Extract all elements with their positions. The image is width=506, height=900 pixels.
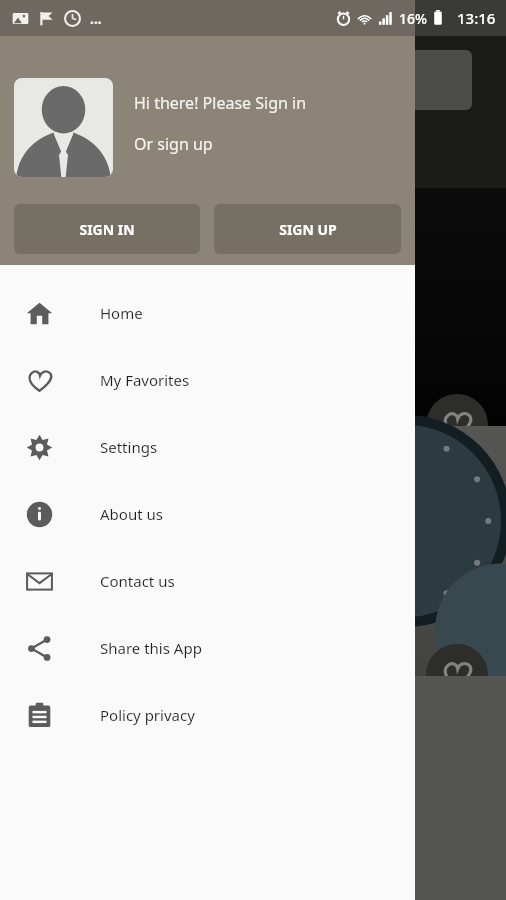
button[interactable]: Share this App: [0, 614, 415, 681]
button[interactable]: Home: [0, 279, 415, 346]
button[interactable]: SIGN UP: [214, 204, 401, 254]
staticText: Contact us: [100, 571, 175, 591]
button[interactable]: Profile picture: [14, 78, 113, 177]
button[interactable]: Favorite: [426, 394, 488, 456]
staticText: About us: [100, 504, 163, 524]
staticText: 13:16: [457, 8, 496, 28]
button[interactable]: Settings: [0, 413, 415, 480]
button[interactable]: SIGN IN: [14, 204, 200, 254]
staticText: ...: [90, 9, 102, 28]
button[interactable]: Contact us: [0, 547, 415, 614]
staticText: Share this App: [100, 638, 202, 658]
staticText: My Favorites: [100, 370, 190, 390]
staticText: Settings: [100, 437, 158, 457]
button[interactable]: Favorite: [426, 644, 488, 706]
staticText: SIGN IN: [79, 220, 135, 239]
button[interactable]: My Favorites: [0, 346, 415, 413]
staticText: 16%: [399, 9, 427, 28]
button[interactable]: About us: [0, 480, 415, 547]
button[interactable]: [34, 50, 472, 110]
button[interactable]: Policy privacy: [0, 681, 415, 748]
staticText: SEASON GENERALITY: [171, 147, 335, 169]
staticText: Policy privacy: [100, 705, 195, 725]
staticText: Home: [100, 303, 143, 323]
staticText: SIGN UP: [279, 220, 337, 239]
staticText: 5 days ago: [20, 442, 91, 461]
staticText: Hi there! Please Sign in: [134, 92, 307, 114]
staticText: Or sign up: [134, 133, 213, 155]
